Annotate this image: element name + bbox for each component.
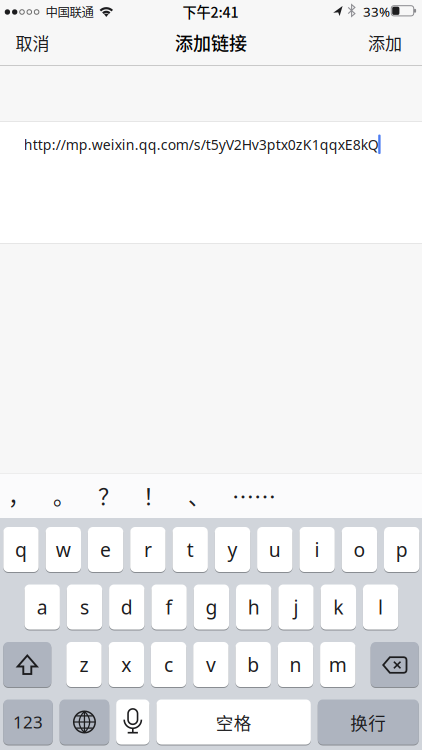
staticText: 取消	[16, 30, 50, 55]
button[interactable]: r	[130, 527, 166, 572]
staticText: h	[248, 594, 260, 620]
button[interactable]: d	[109, 584, 144, 629]
button[interactable]: c	[151, 642, 186, 687]
staticText: t	[187, 536, 194, 563]
staticText: ，	[8, 479, 30, 511]
staticText: j	[293, 594, 298, 620]
button[interactable]: Next keyboard	[60, 699, 109, 744]
button[interactable]: 、	[174, 473, 224, 517]
button[interactable]: u	[257, 527, 292, 572]
staticText: http://mp.weixin.qq.com/s/t5yV2Hv3ptx0zK…	[24, 135, 379, 154]
staticText: 添加	[368, 30, 402, 55]
staticText: b	[247, 651, 259, 678]
button[interactable]: e	[88, 527, 123, 572]
button[interactable]: z	[66, 642, 102, 687]
button[interactable]: h	[236, 584, 271, 629]
staticText: ？	[98, 479, 120, 511]
button[interactable]: x	[109, 642, 144, 687]
staticText: 下午2:41	[182, 1, 238, 22]
button[interactable]: k	[321, 584, 356, 629]
staticText: 中国联通	[45, 2, 93, 20]
button[interactable]: o	[342, 527, 377, 572]
staticText: 33%	[363, 2, 390, 20]
staticText: m	[329, 651, 347, 678]
button[interactable]: 取消	[16, 30, 50, 55]
staticText: x	[121, 651, 131, 678]
staticText: 123	[13, 710, 43, 734]
button[interactable]: m	[320, 642, 355, 687]
button[interactable]: t	[172, 527, 208, 572]
button[interactable]: http://mp.weixin.qq.com/s/t5yV2Hv3ptx0zK…	[0, 122, 422, 243]
button[interactable]: Shift	[3, 642, 51, 687]
button[interactable]: j	[278, 584, 314, 629]
staticText: r	[144, 536, 152, 563]
staticText: v	[206, 651, 216, 678]
button[interactable]: i	[299, 527, 335, 572]
button[interactable]: g	[194, 584, 229, 629]
staticText: i	[315, 536, 320, 563]
button[interactable]: 。	[39, 473, 89, 517]
button[interactable]: a	[24, 584, 60, 629]
staticText: d	[121, 594, 133, 620]
button[interactable]: ！	[129, 473, 179, 517]
button[interactable]: q	[3, 527, 39, 572]
button[interactable]: s	[67, 584, 102, 629]
button[interactable]: p	[384, 527, 419, 572]
staticText: 空格	[216, 709, 252, 735]
staticText: q	[15, 536, 27, 563]
staticText: w	[56, 536, 71, 563]
button[interactable]: 123	[3, 699, 53, 744]
staticText: ！	[143, 479, 165, 511]
button[interactable]: l	[363, 584, 398, 629]
staticText: s	[80, 594, 89, 620]
button[interactable]: 添加	[368, 30, 402, 55]
staticText: 换行	[350, 709, 386, 735]
staticText: ……	[232, 479, 276, 511]
button[interactable]: v	[193, 642, 229, 687]
staticText: p	[396, 536, 408, 563]
button[interactable]: Delete	[371, 642, 419, 687]
staticText: k	[333, 594, 343, 620]
staticText: u	[269, 536, 281, 563]
button[interactable]: ……	[229, 473, 279, 517]
staticText: g	[205, 594, 217, 620]
button[interactable]: w	[46, 527, 81, 572]
button[interactable]: 空格	[156, 699, 311, 744]
staticText: a	[37, 594, 48, 620]
button[interactable]: ，	[0, 473, 44, 517]
button[interactable]: 换行	[318, 699, 419, 744]
staticText: l	[378, 594, 383, 620]
staticText: 添加链接	[175, 29, 247, 56]
button[interactable]: Dictation	[116, 699, 149, 744]
staticText: 。	[53, 479, 75, 511]
button[interactable]: b	[235, 642, 271, 687]
staticText: 、	[188, 479, 210, 511]
button[interactable]: y	[215, 527, 250, 572]
button[interactable]: f	[151, 584, 187, 629]
button[interactable]: n	[278, 642, 313, 687]
staticText: y	[227, 536, 237, 563]
button[interactable]: ？	[84, 473, 134, 517]
staticText: n	[289, 651, 301, 678]
staticText: e	[100, 536, 111, 563]
staticText: z	[79, 651, 88, 678]
staticText: o	[353, 536, 365, 563]
staticText: c	[164, 651, 173, 678]
staticText: f	[166, 594, 173, 620]
